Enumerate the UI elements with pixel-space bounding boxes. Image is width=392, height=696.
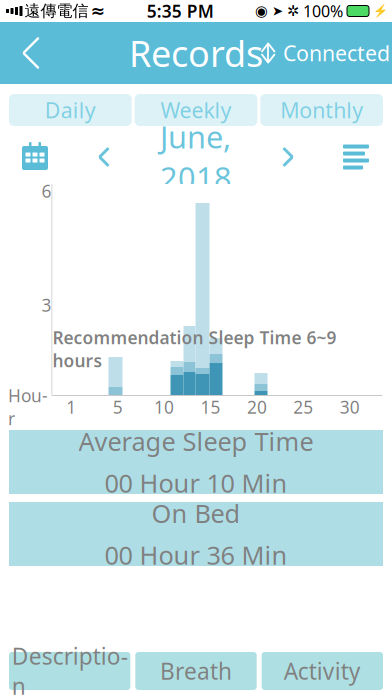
- staticText: ⚡: [373, 4, 388, 18]
- button[interactable]: Monthly: [260, 94, 383, 126]
- staticText: Recommendation Sleep Time 6~9 hours: [52, 326, 336, 372]
- staticText: June, 2018: [160, 116, 232, 198]
- staticText: Records: [129, 29, 263, 77]
- staticText: Description: [12, 641, 128, 696]
- staticText: 00 Hour 36 Min: [104, 538, 287, 572]
- button[interactable]: Connected: [261, 22, 392, 84]
- staticText: Monthly: [280, 96, 363, 124]
- button[interactable]: Activity: [262, 652, 383, 690]
- staticText: Breath: [160, 656, 232, 686]
- staticText: Daily: [45, 96, 96, 124]
- staticText: 5:35 PM: [147, 0, 214, 22]
- button[interactable]: Daily: [9, 94, 132, 126]
- staticText: 5: [113, 395, 123, 418]
- staticText: On Bed: [151, 496, 240, 530]
- staticText: 3: [41, 293, 51, 316]
- staticText: 6: [41, 179, 51, 202]
- staticText: 遠傳電信: [24, 1, 88, 21]
- staticText: 15: [200, 395, 220, 418]
- staticText: 10: [154, 395, 174, 418]
- staticText: ◉: [255, 3, 268, 19]
- button[interactable]: Breath: [135, 652, 257, 690]
- staticText: 20: [247, 395, 267, 418]
- staticText: ➤: [272, 3, 283, 18]
- button[interactable]: Previous month: [87, 137, 121, 177]
- staticText: Hour: [8, 384, 48, 430]
- staticText: Connected: [283, 39, 390, 67]
- staticText: Activity: [284, 656, 361, 686]
- button[interactable]: Back: [0, 22, 62, 84]
- button[interactable]: Weekly: [135, 94, 257, 126]
- staticText: ✲: [287, 3, 299, 19]
- staticText: 00 Hour 10 Min: [104, 466, 287, 500]
- button[interactable]: Calendar: [12, 137, 58, 177]
- staticText: Weekly: [160, 96, 231, 124]
- staticText: 100%: [303, 0, 343, 22]
- staticText: ≈: [90, 1, 105, 21]
- staticText: 30: [340, 395, 360, 418]
- staticText: 1: [66, 395, 76, 418]
- staticText: 25: [293, 395, 313, 418]
- button[interactable]: Next month: [271, 137, 305, 177]
- button[interactable]: June, 2018: [121, 137, 271, 177]
- staticText: Average Sleep Time: [78, 424, 313, 458]
- button[interactable]: Description: [9, 652, 130, 690]
- button[interactable]: List view: [334, 137, 380, 177]
